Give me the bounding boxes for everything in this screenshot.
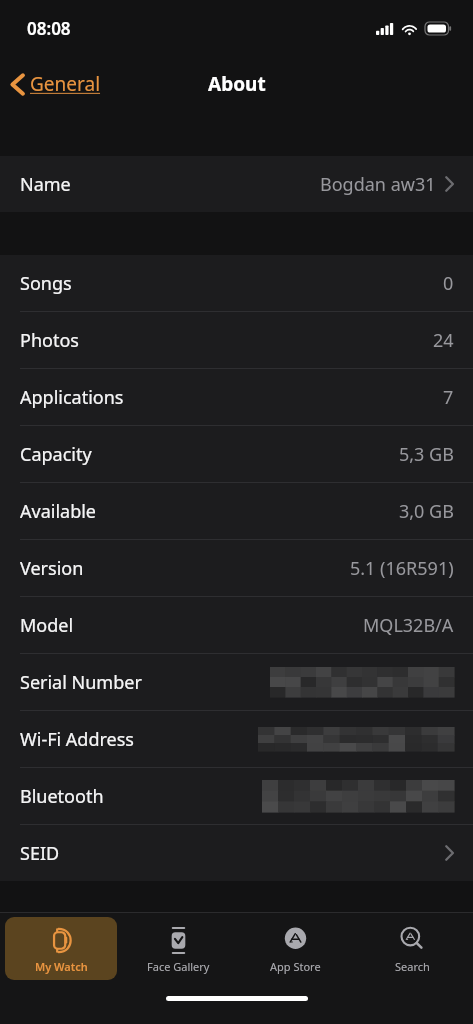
staticText: Search — [395, 959, 430, 974]
staticText: 3,0 GB — [399, 499, 454, 524]
button[interactable]: Name — [0, 156, 473, 212]
button[interactable]: SEID — [0, 825, 473, 881]
button[interactable]: Bluetooth — [0, 768, 473, 824]
staticText: 5.1 (16R591) — [350, 556, 454, 581]
staticText: Name — [20, 172, 71, 197]
staticText: 7 — [443, 385, 454, 410]
button[interactable]: Wi-Fi Address — [0, 711, 473, 767]
staticText: Face Gallery — [147, 959, 210, 974]
staticText: Available — [20, 499, 96, 524]
staticText: Songs — [20, 271, 72, 296]
staticText: My Watch — [35, 959, 88, 974]
staticText: About — [208, 71, 266, 97]
staticText: Applications — [20, 385, 124, 410]
staticText: SEID — [20, 841, 60, 866]
button[interactable]: Face Gallery — [122, 917, 234, 980]
staticText: Wi-Fi Address — [20, 727, 134, 752]
staticText: 24 — [433, 328, 454, 353]
staticText: Bogdan aw31 — [320, 172, 436, 197]
button[interactable]: Available — [0, 483, 473, 539]
other: Open SEID — [445, 845, 454, 861]
button[interactable]: Applications — [0, 369, 473, 425]
staticText: 5,3 GB — [399, 442, 454, 467]
staticText: 08:08 — [27, 17, 71, 40]
button[interactable]: App Store — [239, 917, 351, 980]
staticText: Model — [20, 613, 74, 638]
staticText: Bluetooth — [20, 784, 104, 809]
button[interactable]: Serial Number — [0, 654, 473, 710]
staticText: App Store — [270, 959, 321, 974]
button[interactable]: Capacity — [0, 426, 473, 482]
button[interactable]: Version — [0, 540, 473, 596]
button[interactable]: Photos — [0, 312, 473, 368]
staticText: Capacity — [20, 442, 92, 467]
button[interactable]: Search — [356, 917, 468, 980]
staticText: MQL32B/A — [363, 613, 454, 638]
staticText: Version — [20, 556, 84, 581]
staticText: Photos — [20, 328, 79, 353]
button[interactable]: Songs — [0, 255, 473, 311]
button[interactable]: Model — [0, 597, 473, 653]
staticText: 0 — [443, 271, 454, 296]
button[interactable]: My Watch — [5, 917, 117, 980]
staticText: Serial Number — [20, 670, 142, 695]
staticText: General — [30, 71, 101, 97]
other: Open Name — [445, 176, 454, 192]
button[interactable]: General — [0, 66, 113, 102]
